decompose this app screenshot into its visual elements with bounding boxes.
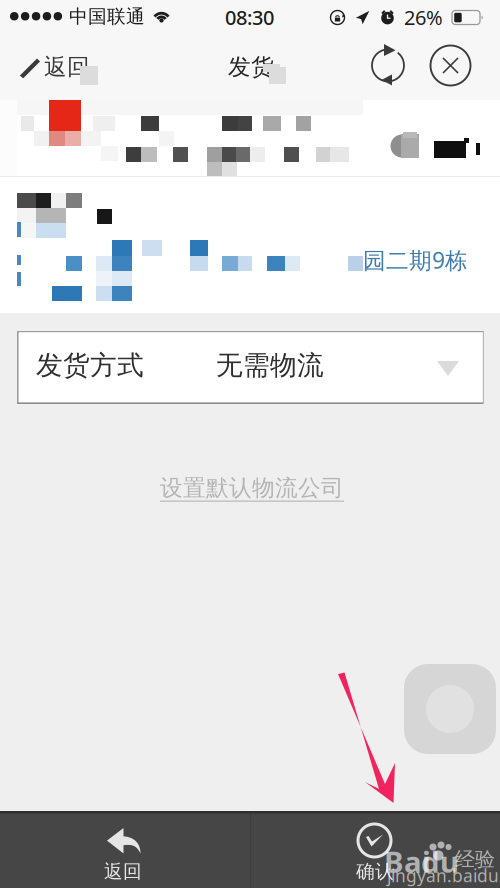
button[interactable]: 返回 [0, 811, 250, 888]
button[interactable]: 确认 [250, 811, 500, 888]
staticText: 返回 [104, 860, 142, 883]
staticText: 中国联通 [69, 5, 145, 28]
staticText: 发货方式 [36, 349, 144, 382]
staticText: Bai [384, 842, 431, 881]
button[interactable]: 发货 [200, 36, 300, 100]
staticText: du [421, 842, 459, 881]
staticText: 08:30 [225, 4, 274, 31]
staticText: 经验 [455, 847, 495, 872]
staticText: 返回 [44, 53, 90, 81]
staticText: 设置默认物流公司 [160, 474, 344, 502]
button[interactable]: Refresh [357, 36, 417, 100]
staticText: 确认 [356, 860, 394, 883]
staticText: 园二期9栋 [363, 245, 468, 275]
staticText: 26% [404, 4, 443, 31]
staticText: 无需物流 [216, 349, 324, 382]
staticText: jingyan.baidu.com [387, 864, 500, 888]
button[interactable]: Close [417, 36, 479, 100]
button[interactable]: 返回 [0, 36, 110, 100]
button[interactable]: 发货方式 [17, 331, 484, 404]
button[interactable]: 设置默认物流公司 [142, 464, 362, 508]
staticText: 发货 [228, 53, 274, 81]
